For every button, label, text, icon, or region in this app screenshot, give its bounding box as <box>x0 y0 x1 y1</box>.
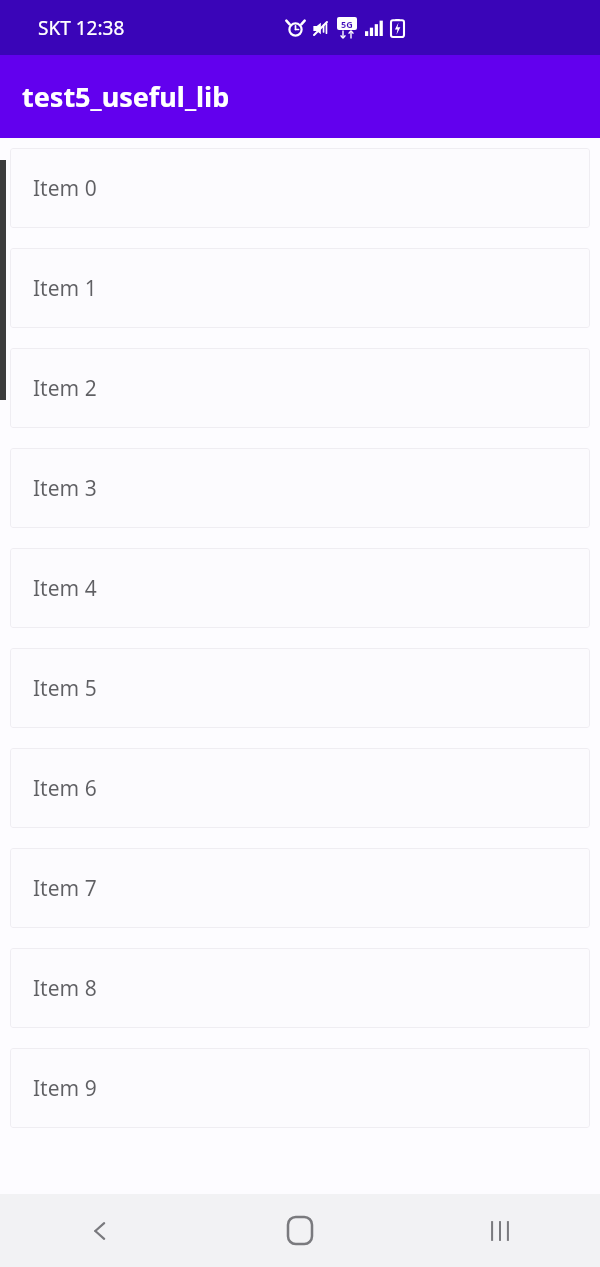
staticText: Item 8 <box>33 974 97 1003</box>
button[interactable]: Item 9 <box>10 1048 590 1128</box>
button[interactable]: Back <box>0 1194 200 1267</box>
button[interactable]: Item 0 <box>10 148 590 228</box>
button[interactable]: Item 2 <box>10 348 590 428</box>
staticText: Item 3 <box>33 474 97 503</box>
staticText: Item 9 <box>33 1074 97 1103</box>
staticText: Item 0 <box>33 174 97 203</box>
staticText: test5_useful_lib <box>22 78 230 115</box>
staticText: Item 4 <box>33 574 97 603</box>
button[interactable]: Recent apps <box>400 1194 600 1267</box>
staticText: Item 7 <box>33 874 97 903</box>
button[interactable]: Item 3 <box>10 448 590 528</box>
staticText: Item 6 <box>33 774 97 803</box>
button[interactable]: Home <box>200 1194 400 1267</box>
button[interactable]: Item 5 <box>10 648 590 728</box>
staticText: Item 2 <box>33 374 97 403</box>
button[interactable]: Item 1 <box>10 248 590 328</box>
staticText: Item 1 <box>33 274 97 303</box>
button[interactable]: Item 4 <box>10 548 590 628</box>
staticText: SKT 12:38 <box>38 15 125 41</box>
button[interactable]: Item 8 <box>10 948 590 1028</box>
staticText: Item 5 <box>33 674 97 703</box>
button[interactable]: Item 7 <box>10 848 590 928</box>
button[interactable]: Item 6 <box>10 748 590 828</box>
staticText: 5G <box>341 18 353 30</box>
